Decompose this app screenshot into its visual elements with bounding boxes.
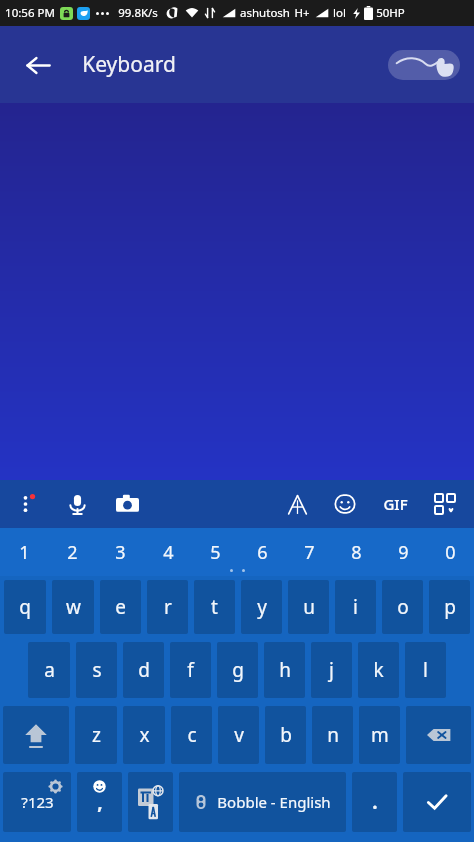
staticText: i [353,594,358,620]
staticText: n [327,722,339,748]
staticText: c [187,722,197,748]
button[interactable]: Change language [128,772,173,832]
staticText: a [44,657,55,683]
button[interactable]: w [52,580,94,634]
staticText: 2 [67,540,78,565]
staticText: j [329,657,334,683]
button[interactable]: 3 [96,528,144,576]
staticText: 5 [210,540,221,565]
button[interactable]: Period [352,772,397,832]
button[interactable]: p [429,580,470,634]
button[interactable]: 5 [192,528,239,576]
button[interactable]: More apps [428,487,462,521]
button[interactable]: More options [12,487,46,521]
button[interactable]: 8 [333,528,380,576]
button[interactable]: m [359,706,400,764]
button[interactable]: i [335,580,376,634]
button[interactable]: Fonts [280,487,314,521]
button[interactable]: c [171,706,212,764]
button[interactable]: t [194,580,235,634]
button[interactable]: 4 [144,528,192,576]
staticText: , [97,789,103,815]
staticText: lol [333,5,346,21]
button[interactable]: l [405,642,446,698]
staticText: m [371,722,389,748]
staticText: o [397,594,409,620]
button[interactable]: o [382,580,423,634]
staticText: u [303,594,315,620]
button[interactable]: 1 [0,528,48,576]
button[interactable]: d [123,642,164,698]
staticText: 6 [257,540,268,565]
button[interactable]: v [218,706,259,764]
staticText: v [234,722,244,748]
button[interactable]: r [147,580,188,634]
staticText: q [19,594,31,620]
button[interactable]: e [100,580,141,634]
button[interactable]: Backspace [406,706,471,764]
staticText: d [138,657,150,683]
button[interactable]: y [241,580,282,634]
staticText: H+ [294,5,310,21]
staticText: Keyboard [82,50,176,79]
button[interactable]: Swipe typing toggle [388,50,460,80]
button[interactable]: Shift [3,706,69,764]
staticText: t [211,594,218,620]
button[interactable]: Space [179,772,346,832]
staticText: ashutosh [240,5,290,21]
button[interactable]: Voice input [60,487,94,521]
button[interactable]: j [311,642,352,698]
button[interactable]: 0 [427,528,474,576]
button[interactable]: Stickers [328,487,362,521]
staticText: 0 [445,540,456,565]
button[interactable]: k [358,642,399,698]
staticText: . [372,789,378,815]
button[interactable]: b [265,706,306,764]
staticText: 9 [398,540,409,565]
button[interactable]: z [75,706,117,764]
button[interactable]: x [123,706,165,764]
button[interactable]: 7 [286,528,333,576]
button[interactable]: Comma [77,772,122,832]
button[interactable]: 9 [380,528,427,576]
button[interactable]: GIF [376,485,414,523]
button[interactable]: q [4,580,46,634]
staticText: p [444,594,456,620]
staticText: s [92,657,102,683]
button[interactable]: a [28,642,70,698]
button[interactable]: f [170,642,211,698]
button[interactable]: Enter [403,772,471,832]
staticText: e [115,594,126,620]
staticText: z [92,722,101,748]
staticText: g [232,657,244,683]
button[interactable]: Camera [110,487,144,521]
button[interactable]: h [264,642,305,698]
staticText: h [279,657,291,683]
staticText: l [423,657,428,683]
button[interactable]: u [288,580,329,634]
staticText: w [66,594,81,620]
staticText: y [257,594,267,620]
staticText: 3 [115,540,126,565]
staticText: 10:56 PM [5,5,55,21]
staticText: k [373,657,384,683]
staticText: r [164,594,172,620]
button[interactable]: 6 [239,528,286,576]
staticText: Bobble - English [217,792,331,812]
button[interactable]: g [217,642,258,698]
button[interactable]: Back [14,41,62,89]
staticText: 7 [304,540,315,565]
staticText: 99.8K/s [118,5,158,21]
button[interactable]: n [312,706,353,764]
button[interactable]: s [76,642,117,698]
staticText: b [280,722,292,748]
button[interactable]: Symbols [3,772,71,832]
staticText: ?123 [21,792,54,812]
staticText: 1 [19,540,30,565]
button[interactable]: 2 [48,528,96,576]
staticText: 8 [351,540,362,565]
staticText: 50HP [376,5,405,21]
staticText: x [139,722,150,748]
staticText: f [187,657,194,683]
staticText: 4 [163,540,174,565]
